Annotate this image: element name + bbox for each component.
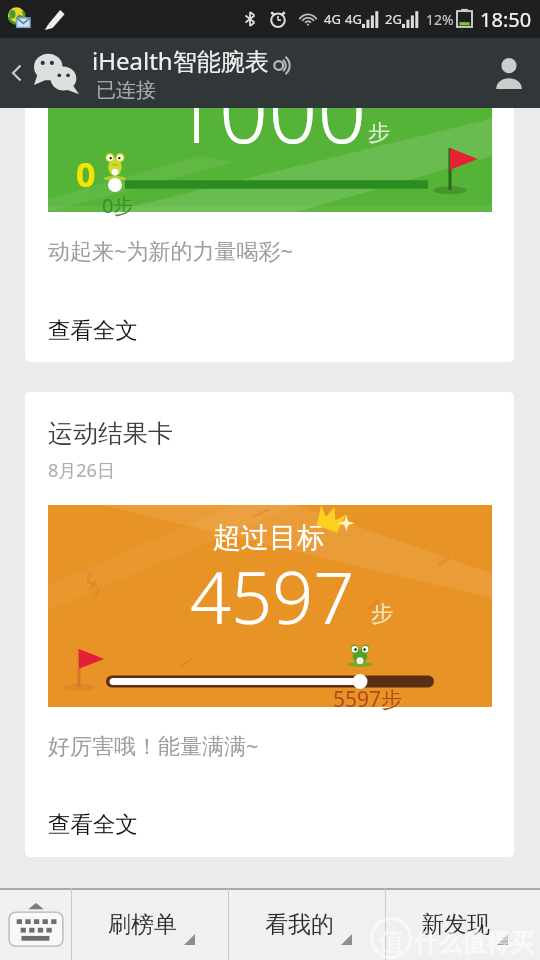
button[interactable]: Keyboard xyxy=(0,888,71,960)
staticText: 值 xyxy=(379,926,404,957)
staticText: 1000 xyxy=(170,108,367,155)
staticText: 4G xyxy=(345,10,362,28)
staticText: 刷榜单 xyxy=(108,910,177,939)
staticText: 查看全文 xyxy=(48,316,138,344)
staticText: 已连接 xyxy=(96,78,156,103)
staticText: 4597 xyxy=(190,547,355,645)
staticText: 好厉害哦！能量满满~ xyxy=(48,730,259,760)
staticText: 动起来~为新的力量喝彩~ xyxy=(48,235,294,265)
staticText: 0步 xyxy=(102,192,134,219)
staticText: 8月26日 xyxy=(48,458,115,483)
button[interactable]: Profile xyxy=(478,38,540,108)
staticText: 查看全文 xyxy=(48,810,138,838)
staticText: 什么值得买 xyxy=(414,928,534,958)
staticText: 超过目标 xyxy=(213,520,325,555)
button[interactable]: Back xyxy=(0,38,34,108)
button[interactable]: 看我的 xyxy=(229,888,385,960)
staticText: 看我的 xyxy=(265,910,334,939)
staticText: 新发现 xyxy=(421,910,490,939)
staticText: 运动结果卡 xyxy=(48,418,173,449)
staticText: 18:50 xyxy=(480,6,532,33)
staticText: 2G xyxy=(385,10,402,28)
staticText: 12% xyxy=(426,10,454,29)
button[interactable]: 刷榜单 xyxy=(72,888,228,960)
staticText: 4G xyxy=(324,10,341,28)
button[interactable]: 新发现 xyxy=(386,888,540,960)
button[interactable]: 查看全文 xyxy=(25,802,514,844)
staticText: 0 xyxy=(76,151,96,197)
staticText: 5597步 xyxy=(333,685,403,714)
staticText: 步 xyxy=(368,119,390,147)
staticText: 步 xyxy=(371,600,393,628)
staticText: iHealth智能腕表 xyxy=(92,44,269,77)
button[interactable]: 查看全文 xyxy=(25,308,514,350)
